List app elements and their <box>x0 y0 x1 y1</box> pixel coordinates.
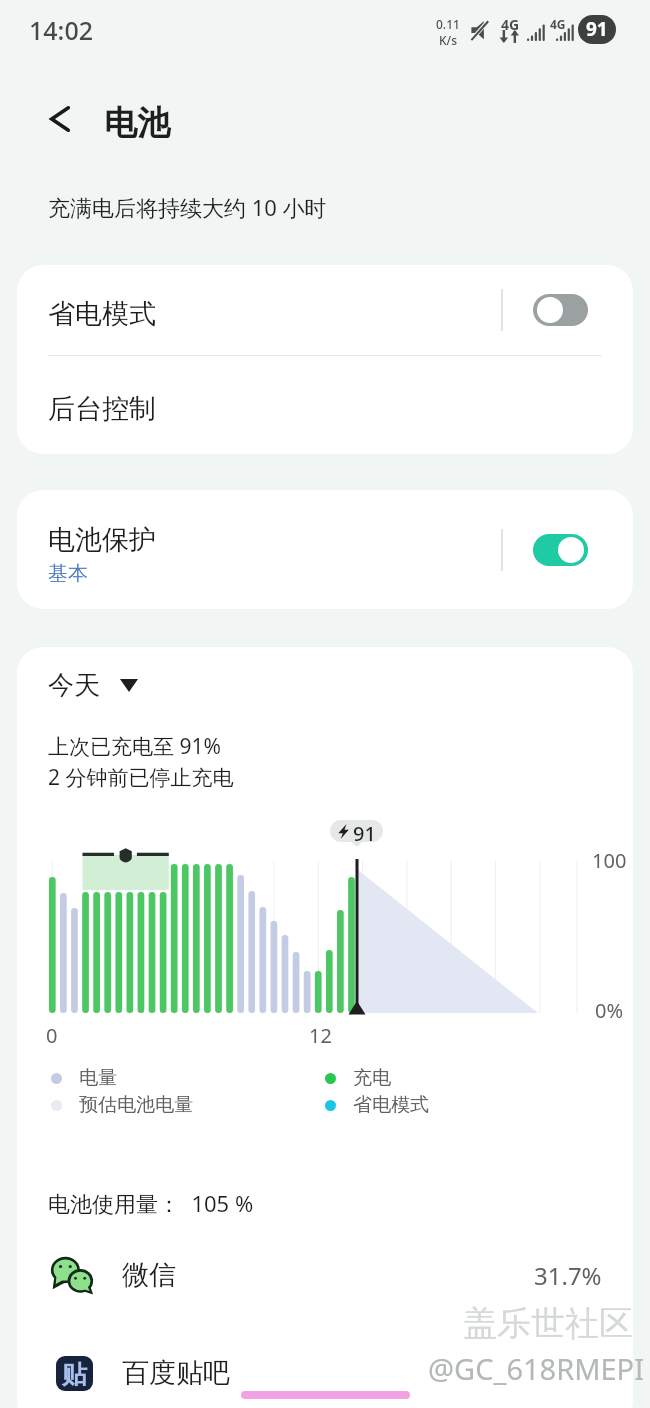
staticText: 电池 <box>104 102 170 144</box>
button[interactable]: 91 <box>330 820 383 842</box>
button[interactable]: 贴 <box>17 1341 633 1405</box>
staticText: 今天 <box>48 669 100 702</box>
staticText: 充满电后将持续大约 10 小时 <box>48 192 327 222</box>
staticText: 4G <box>501 15 520 34</box>
staticText: 省电模式 <box>353 1093 429 1117</box>
staticText: 0 <box>46 1022 58 1049</box>
staticText: 百度贴吧 <box>122 1356 230 1390</box>
staticText: 充电 <box>353 1066 391 1090</box>
button[interactable]: Back <box>32 92 86 146</box>
button[interactable]: 省电模式 <box>17 265 633 355</box>
button[interactable]: Off <box>533 294 588 326</box>
staticText: 贴 <box>62 1359 87 1390</box>
staticText: 0.11 <box>436 16 460 32</box>
staticText: 2 分钟前已停止充电 <box>48 763 234 792</box>
staticText: 电池使用量： 105 % <box>48 1188 254 1218</box>
button[interactable]: 电池保护 <box>17 490 633 609</box>
staticText: 31.7% <box>534 1259 602 1292</box>
staticText: 100 <box>592 847 627 874</box>
staticText: 后台控制 <box>48 392 156 426</box>
staticText: 91 <box>353 820 376 842</box>
button[interactable]: 微信 <box>17 1243 633 1307</box>
staticText: 预估电池电量 <box>79 1093 193 1117</box>
staticText: 微信 <box>122 1258 176 1292</box>
staticText: 盖乐世社区 <box>463 1302 633 1345</box>
staticText: @GC_618RMEPI <box>428 1349 644 1388</box>
button[interactable]: On <box>533 534 588 566</box>
staticText: 上次已充电至 91% <box>48 732 221 761</box>
staticText: 省电模式 <box>48 297 156 331</box>
staticText: 14:02 <box>29 13 94 47</box>
staticText: 0% <box>595 997 624 1024</box>
staticText: 电量 <box>79 1066 117 1090</box>
staticText: K/s <box>439 32 458 48</box>
staticText: 91 <box>586 16 608 42</box>
staticText: 基本 <box>48 561 88 586</box>
staticText: 4G <box>550 16 566 32</box>
staticText: 12 <box>309 1022 332 1049</box>
button[interactable]: 后台控制 <box>17 356 633 454</box>
staticText: 电池保护 <box>48 523 156 557</box>
button[interactable]: 今天 <box>48 669 138 702</box>
